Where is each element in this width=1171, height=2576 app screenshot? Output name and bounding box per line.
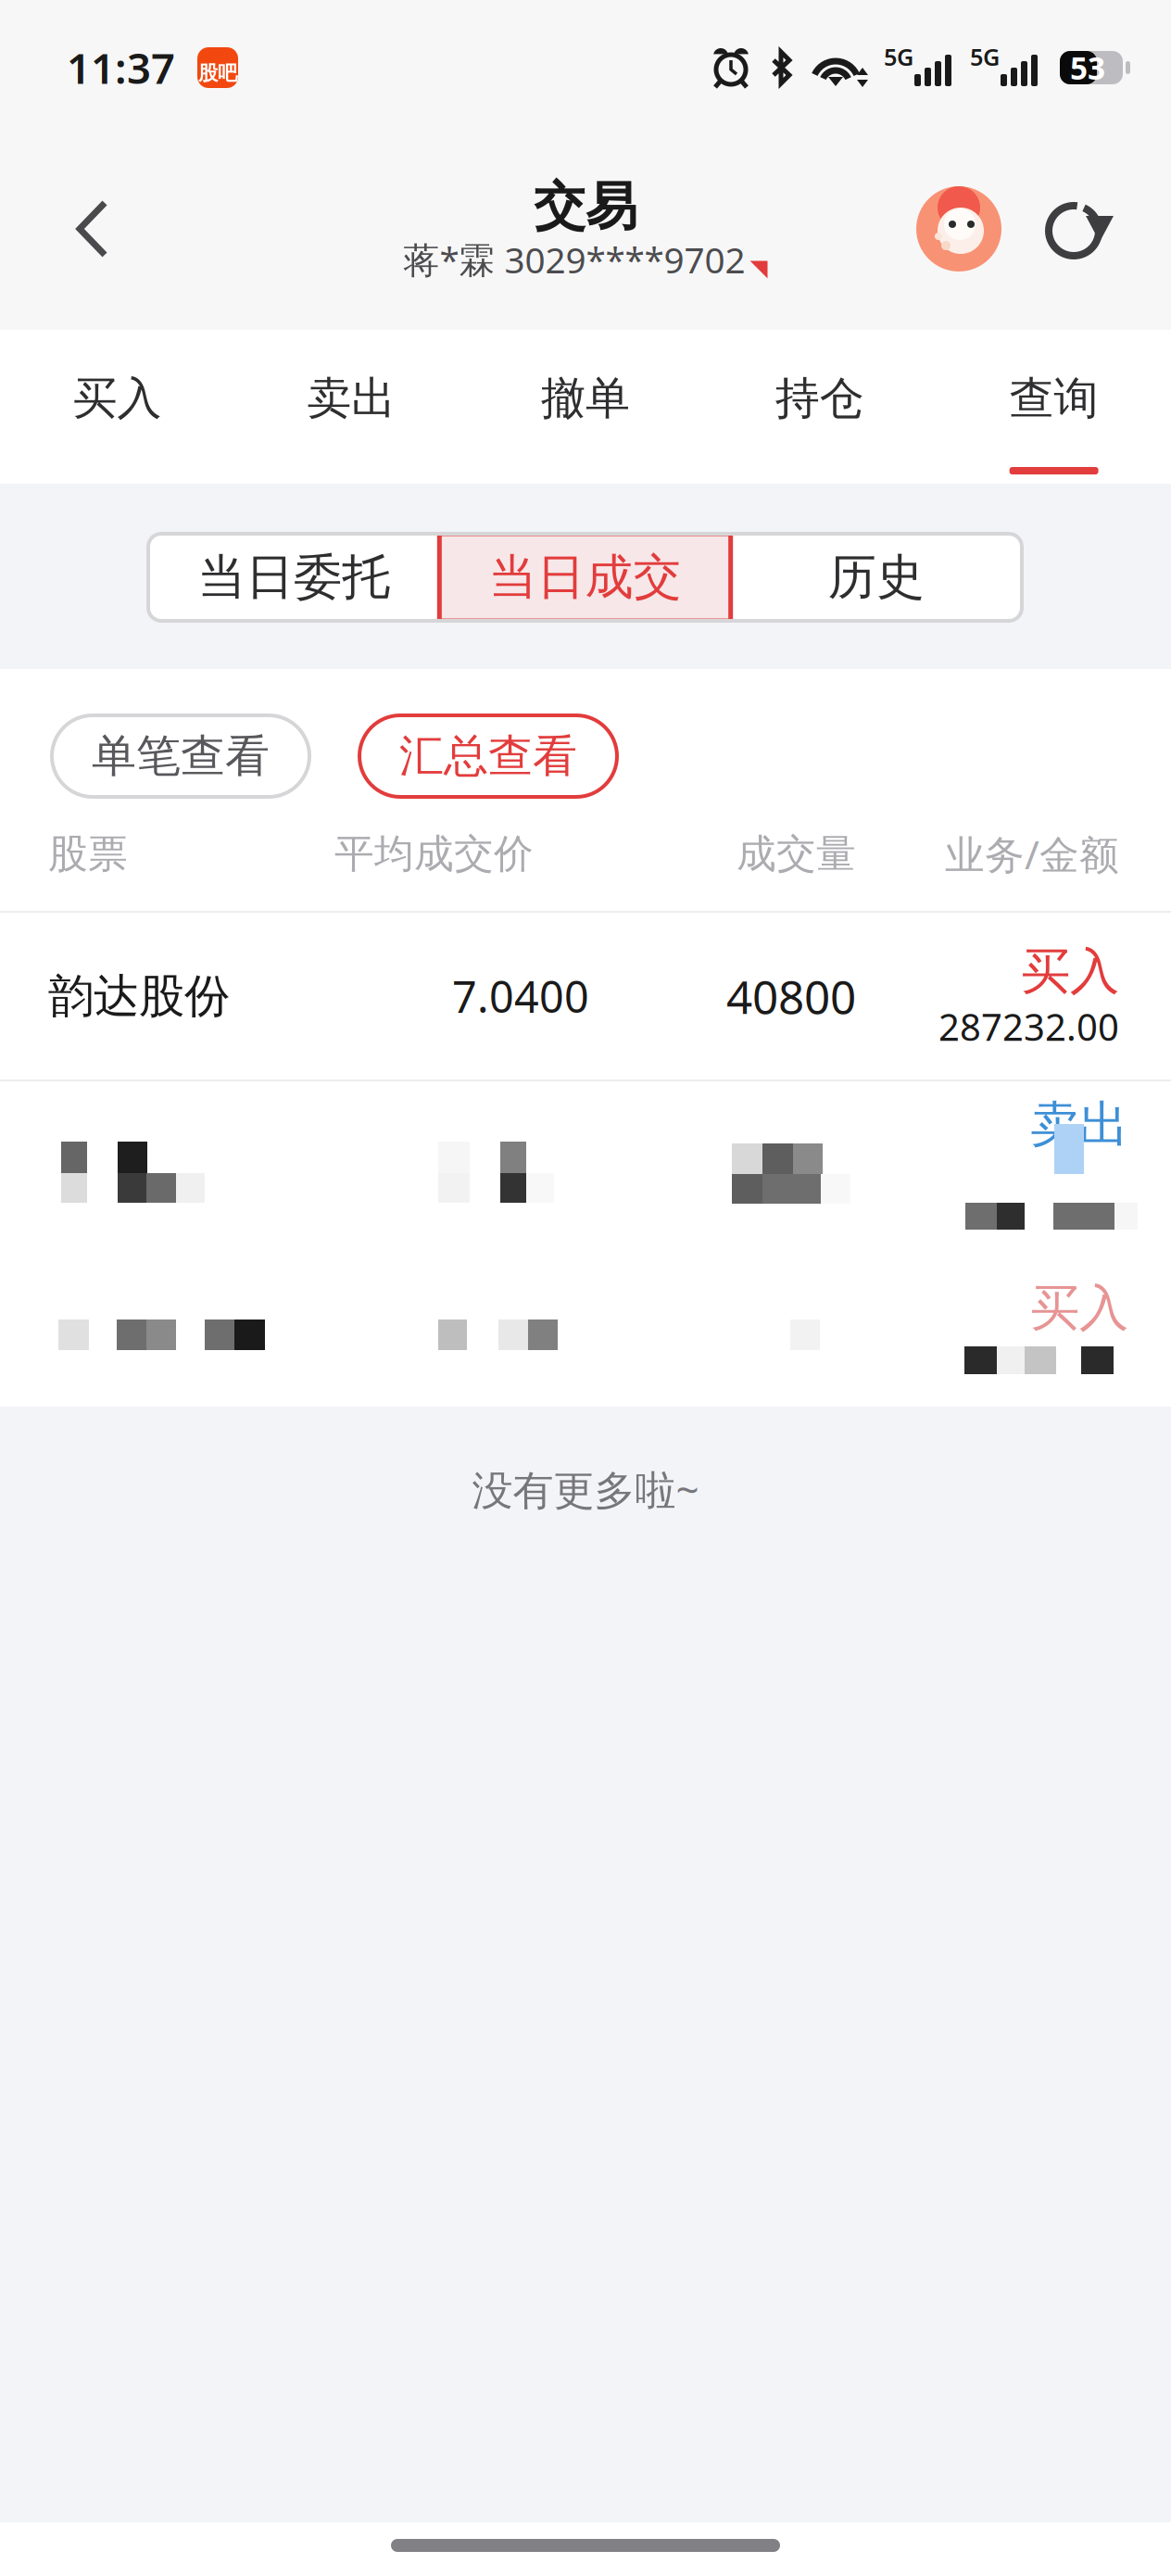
button[interactable]: 买入 xyxy=(0,330,234,484)
button[interactable]: 卖出 xyxy=(234,330,468,484)
staticText: 韵达股份 xyxy=(48,968,230,1024)
staticText: 卖出 xyxy=(1030,1094,1128,1155)
staticText: 持仓 xyxy=(775,371,864,426)
staticText: 买入 xyxy=(1030,1278,1128,1339)
button[interactable]: 客服 xyxy=(916,169,1001,289)
staticText: 交易 xyxy=(534,175,637,239)
button[interactable]: 韵达股份 xyxy=(0,913,1171,1080)
button[interactable]: 当日成交 xyxy=(439,534,731,621)
staticText: 287232.00 xyxy=(938,1002,1119,1051)
button[interactable]: 汇总查看 xyxy=(359,715,617,797)
staticText: 单笔查看 xyxy=(92,729,270,783)
staticText: 没有更多啦~ xyxy=(472,1462,699,1516)
staticText: 平均成交价 xyxy=(334,830,534,878)
staticText: 53 xyxy=(1070,47,1105,88)
staticText: 卖出 xyxy=(307,371,396,426)
staticText: 蒋*霖 3029****9702 xyxy=(403,236,745,283)
staticText: 5G xyxy=(884,41,913,72)
staticText: 撤单 xyxy=(541,371,630,426)
button[interactable]: 单笔查看 xyxy=(52,715,309,797)
staticText: 5G xyxy=(970,41,1000,72)
staticText: 查询 xyxy=(1009,371,1098,426)
button[interactable]: 撤单 xyxy=(468,330,703,484)
staticText: 历史 xyxy=(828,548,924,607)
staticText: 业务/金额 xyxy=(945,828,1119,880)
staticText: 当日委托 xyxy=(198,548,390,607)
staticText: 汇总查看 xyxy=(399,729,577,783)
staticText: 11:37 xyxy=(67,40,175,96)
staticText: 当日成交 xyxy=(489,548,681,607)
button[interactable]: 持仓 xyxy=(703,330,937,484)
button[interactable]: 返回 xyxy=(0,169,153,289)
staticText: 40800 xyxy=(726,966,856,1026)
button[interactable]: 当日委托 xyxy=(148,534,439,621)
button[interactable]: 查询 xyxy=(937,330,1171,484)
staticText: 股吧 xyxy=(198,61,237,85)
button[interactable]: 刷新 xyxy=(1046,169,1114,289)
staticText: 股票 xyxy=(48,830,128,878)
staticText: 成交量 xyxy=(737,830,856,878)
staticText: 7.0400 xyxy=(452,967,589,1025)
staticText: 买入 xyxy=(73,371,162,426)
button[interactable]: 历史 xyxy=(731,534,1022,621)
staticText: 买入 xyxy=(1021,941,1119,1002)
